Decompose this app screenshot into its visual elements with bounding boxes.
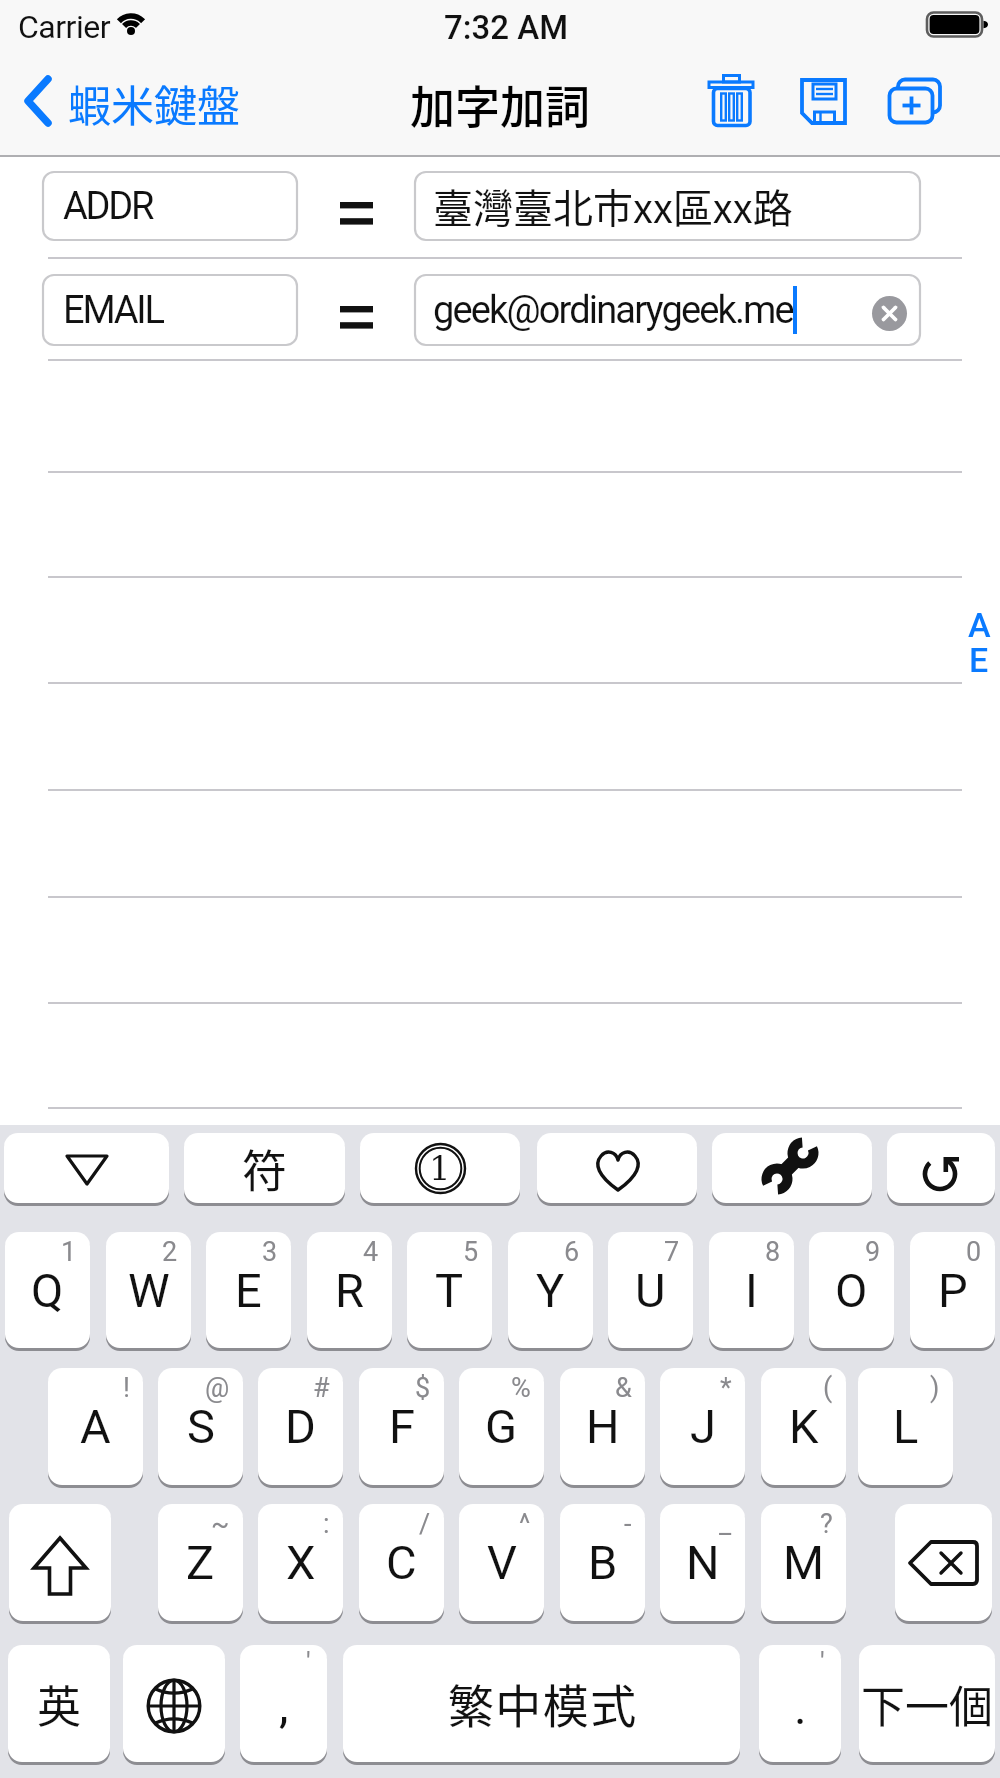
button[interactable]: A xyxy=(48,1368,143,1485)
button[interactable]: I xyxy=(709,1232,794,1348)
staticText: 8 xyxy=(765,1236,781,1268)
button[interactable]: X xyxy=(258,1504,343,1621)
staticText: . xyxy=(794,1679,807,1735)
button[interactable] xyxy=(123,1645,225,1762)
button[interactable] xyxy=(800,78,847,125)
button[interactable]: C xyxy=(359,1504,444,1621)
staticText: 4 xyxy=(363,1236,379,1268)
staticText: Y xyxy=(536,1263,565,1318)
staticText: 7:32 AM xyxy=(444,8,569,44)
staticText: & xyxy=(615,1372,632,1404)
button[interactable]: H xyxy=(560,1368,645,1485)
button[interactable] xyxy=(707,74,755,128)
staticText: $ xyxy=(415,1372,431,1404)
button[interactable]: W xyxy=(106,1232,191,1348)
staticText: ( xyxy=(823,1372,833,1404)
staticText: A xyxy=(968,605,991,641)
staticText: 7 xyxy=(664,1236,680,1268)
button[interactable] xyxy=(887,1133,995,1203)
staticText: 2 xyxy=(162,1236,178,1268)
button[interactable]: EMAIL xyxy=(43,275,297,345)
button[interactable]: G xyxy=(459,1368,544,1485)
staticText: , xyxy=(279,1677,289,1733)
staticText: _ xyxy=(719,1508,732,1540)
staticText: F xyxy=(389,1399,415,1454)
button[interactable]: , xyxy=(240,1645,327,1762)
button[interactable]: R xyxy=(307,1232,392,1348)
button[interactable]: 下一個 xyxy=(859,1645,995,1762)
staticText: ! xyxy=(123,1372,130,1404)
button[interactable] xyxy=(9,1504,111,1621)
button[interactable]: Q xyxy=(5,1232,90,1348)
staticText: ) xyxy=(930,1372,940,1404)
button[interactable]: Y xyxy=(508,1232,593,1348)
staticText: J xyxy=(690,1399,716,1454)
button[interactable]: L xyxy=(858,1368,953,1485)
staticText: 5 xyxy=(463,1236,479,1268)
button[interactable]: 符 xyxy=(184,1133,345,1203)
button[interactable]: 繁中模式 xyxy=(343,1645,740,1762)
staticText: U xyxy=(635,1263,666,1318)
button[interactable]: S xyxy=(158,1368,243,1485)
staticText: S xyxy=(187,1399,215,1454)
staticText: 加字加詞 xyxy=(410,72,591,130)
staticText: 符 xyxy=(242,1136,288,1201)
staticText: L xyxy=(893,1399,919,1454)
staticText: C xyxy=(386,1535,417,1590)
button[interactable]: 英 xyxy=(8,1645,110,1762)
staticText: 6 xyxy=(564,1236,580,1268)
staticText: A xyxy=(80,1399,111,1454)
button[interactable]: geek@ordinarygeek.me xyxy=(415,275,920,345)
staticText: 3 xyxy=(262,1236,278,1268)
staticText: ? xyxy=(820,1508,833,1540)
button[interactable]: E xyxy=(206,1232,291,1348)
staticText: I xyxy=(745,1263,758,1318)
button[interactable]: J xyxy=(660,1368,745,1485)
staticText: 英 xyxy=(37,1672,81,1736)
button[interactable]: N xyxy=(660,1504,745,1621)
staticText: W xyxy=(128,1263,170,1318)
staticText: V xyxy=(487,1535,517,1590)
staticText: 1 xyxy=(429,1148,451,1188)
staticText: ADDR xyxy=(63,184,153,229)
button[interactable]: Z xyxy=(158,1504,243,1621)
staticText: @ xyxy=(205,1372,230,1404)
staticText: 下一個 xyxy=(861,1672,993,1736)
staticText: Q xyxy=(31,1263,64,1318)
staticText: N xyxy=(686,1535,720,1590)
staticText: Z xyxy=(186,1535,215,1590)
staticText: EMAIL xyxy=(63,288,163,333)
button[interactable] xyxy=(4,1133,169,1203)
button[interactable]: F xyxy=(359,1368,444,1485)
button[interactable]: U xyxy=(608,1232,693,1348)
staticText: ' xyxy=(306,1647,311,1679)
button[interactable] xyxy=(537,1133,697,1203)
staticText: geek@ordinarygeek.me xyxy=(433,288,793,333)
staticText: R xyxy=(335,1263,364,1318)
button[interactable]: 蝦米鍵盤 xyxy=(24,72,254,130)
staticText: / xyxy=(419,1508,431,1540)
button[interactable]: . xyxy=(759,1645,841,1762)
button[interactable]: V xyxy=(459,1504,544,1621)
staticText: K xyxy=(789,1399,819,1454)
button[interactable] xyxy=(884,74,944,126)
staticText: ^ xyxy=(519,1508,531,1540)
staticText: - xyxy=(624,1508,632,1540)
staticText: * xyxy=(720,1372,732,1404)
button[interactable]: O xyxy=(809,1232,894,1348)
button[interactable] xyxy=(895,1504,992,1621)
button[interactable]: 1 xyxy=(360,1133,520,1203)
button[interactable]: P xyxy=(910,1232,995,1348)
staticText: M xyxy=(783,1535,825,1590)
staticText: 1 xyxy=(61,1236,77,1268)
staticText: X xyxy=(286,1535,316,1590)
button[interactable]: B xyxy=(560,1504,645,1621)
button[interactable]: M xyxy=(761,1504,846,1621)
button[interactable]: D xyxy=(258,1368,343,1485)
staticText: 蝦米鍵盤 xyxy=(68,72,240,130)
button[interactable]: 臺灣臺北市xx區xx路 xyxy=(415,172,920,240)
button[interactable]: K xyxy=(761,1368,846,1485)
button[interactable]: ADDR xyxy=(43,172,297,240)
button[interactable] xyxy=(712,1133,872,1203)
button[interactable]: T xyxy=(407,1232,492,1348)
